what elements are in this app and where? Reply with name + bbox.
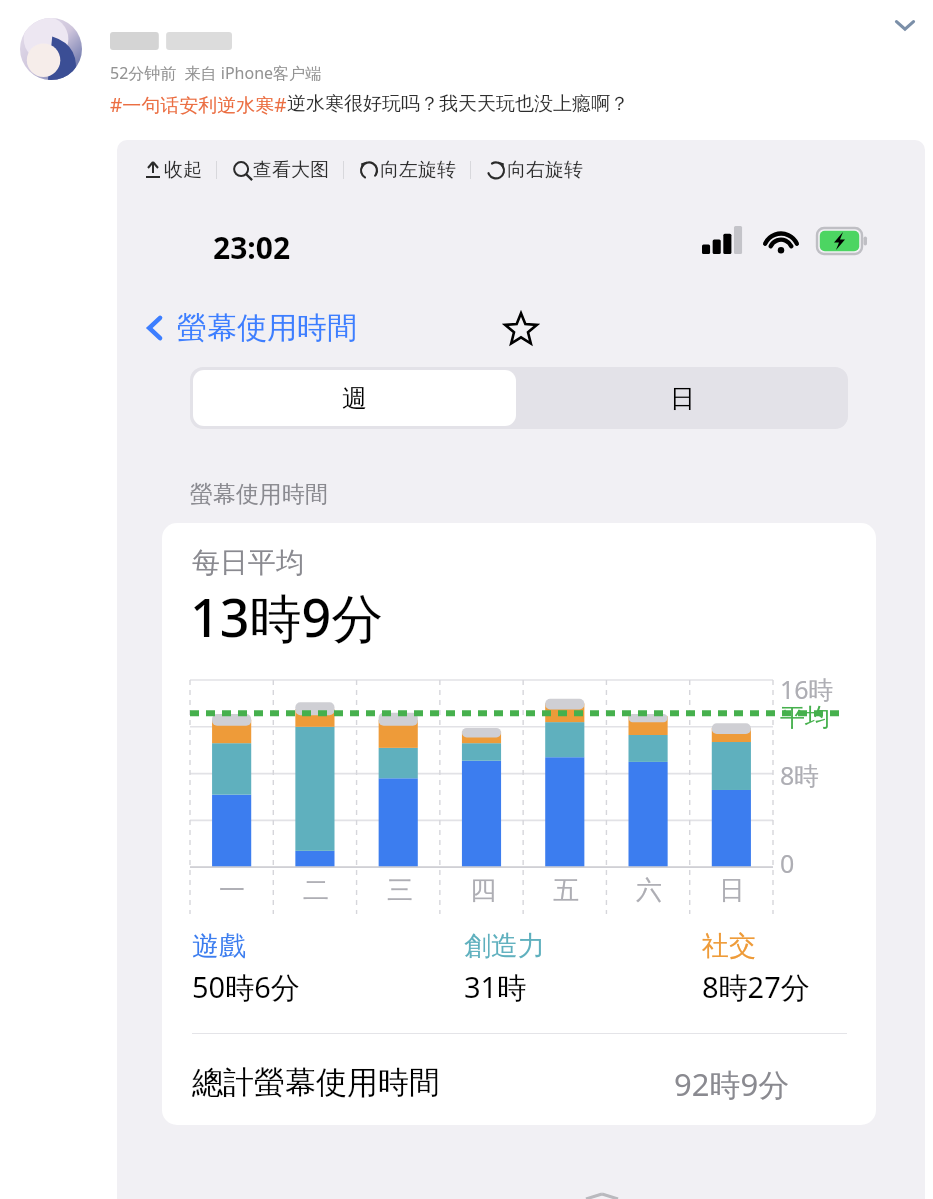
button[interactable]: 查看大图 [229,158,331,182]
staticText: 16時 [780,672,834,706]
button[interactable]: Favorite [502,311,540,349]
button[interactable]: 日 [519,370,845,426]
button[interactable]: 螢幕使用時間 [139,309,357,347]
staticText: 每日平均 [192,545,304,580]
button[interactable]: 週 [193,370,516,426]
staticText: 23:02 [213,227,291,268]
staticText: 六 [636,874,662,907]
staticText: 收起 [164,158,202,182]
staticText: 一 [219,874,245,907]
button[interactable]: #一句话安利逆水寒# [110,92,287,118]
staticText: 遊戲 [192,929,246,963]
staticText: 五 [553,874,579,907]
staticText: 8時27分 [702,967,810,1007]
staticText: 總計螢幕使用時間 [192,1063,440,1102]
staticText: 四 [470,874,496,907]
staticText: 日 [670,383,695,414]
button[interactable]: 收起 [140,158,204,182]
staticText: 週 [342,383,367,414]
staticText: 50時6分 [192,967,300,1007]
staticText: 逆水寒很好玩吗？我天天玩也没上瘾啊？ [287,92,629,116]
staticText: 8時 [780,758,820,792]
staticText: 螢幕使用時間 [177,309,357,347]
staticText: 創造力 [464,929,545,963]
button[interactable]: 向右旋转 [483,158,585,182]
staticText: 日 [719,874,745,907]
staticText: 92時9分 [674,1063,790,1105]
staticText: 平均 [780,702,830,733]
staticText: 二 [303,874,329,907]
staticText: 13時9分 [190,581,384,652]
button[interactable]: 向左旋转 [356,158,458,182]
button[interactable]: User avatar [20,18,82,80]
staticText: 向左旋转 [380,158,456,182]
staticText: 0 [780,846,795,880]
staticText: 向右旋转 [507,158,583,182]
staticText: 31時 [464,967,527,1007]
staticText: 52分钟前 来自 iPhone客户端 [110,62,322,84]
button[interactable]: Collapse [888,8,922,42]
staticText: 查看大图 [253,158,329,182]
staticText: 社交 [702,929,756,963]
button[interactable]: 每日平均 [162,523,876,1125]
staticText: 三 [387,874,413,907]
staticText: 螢幕使用時間 [190,480,328,509]
